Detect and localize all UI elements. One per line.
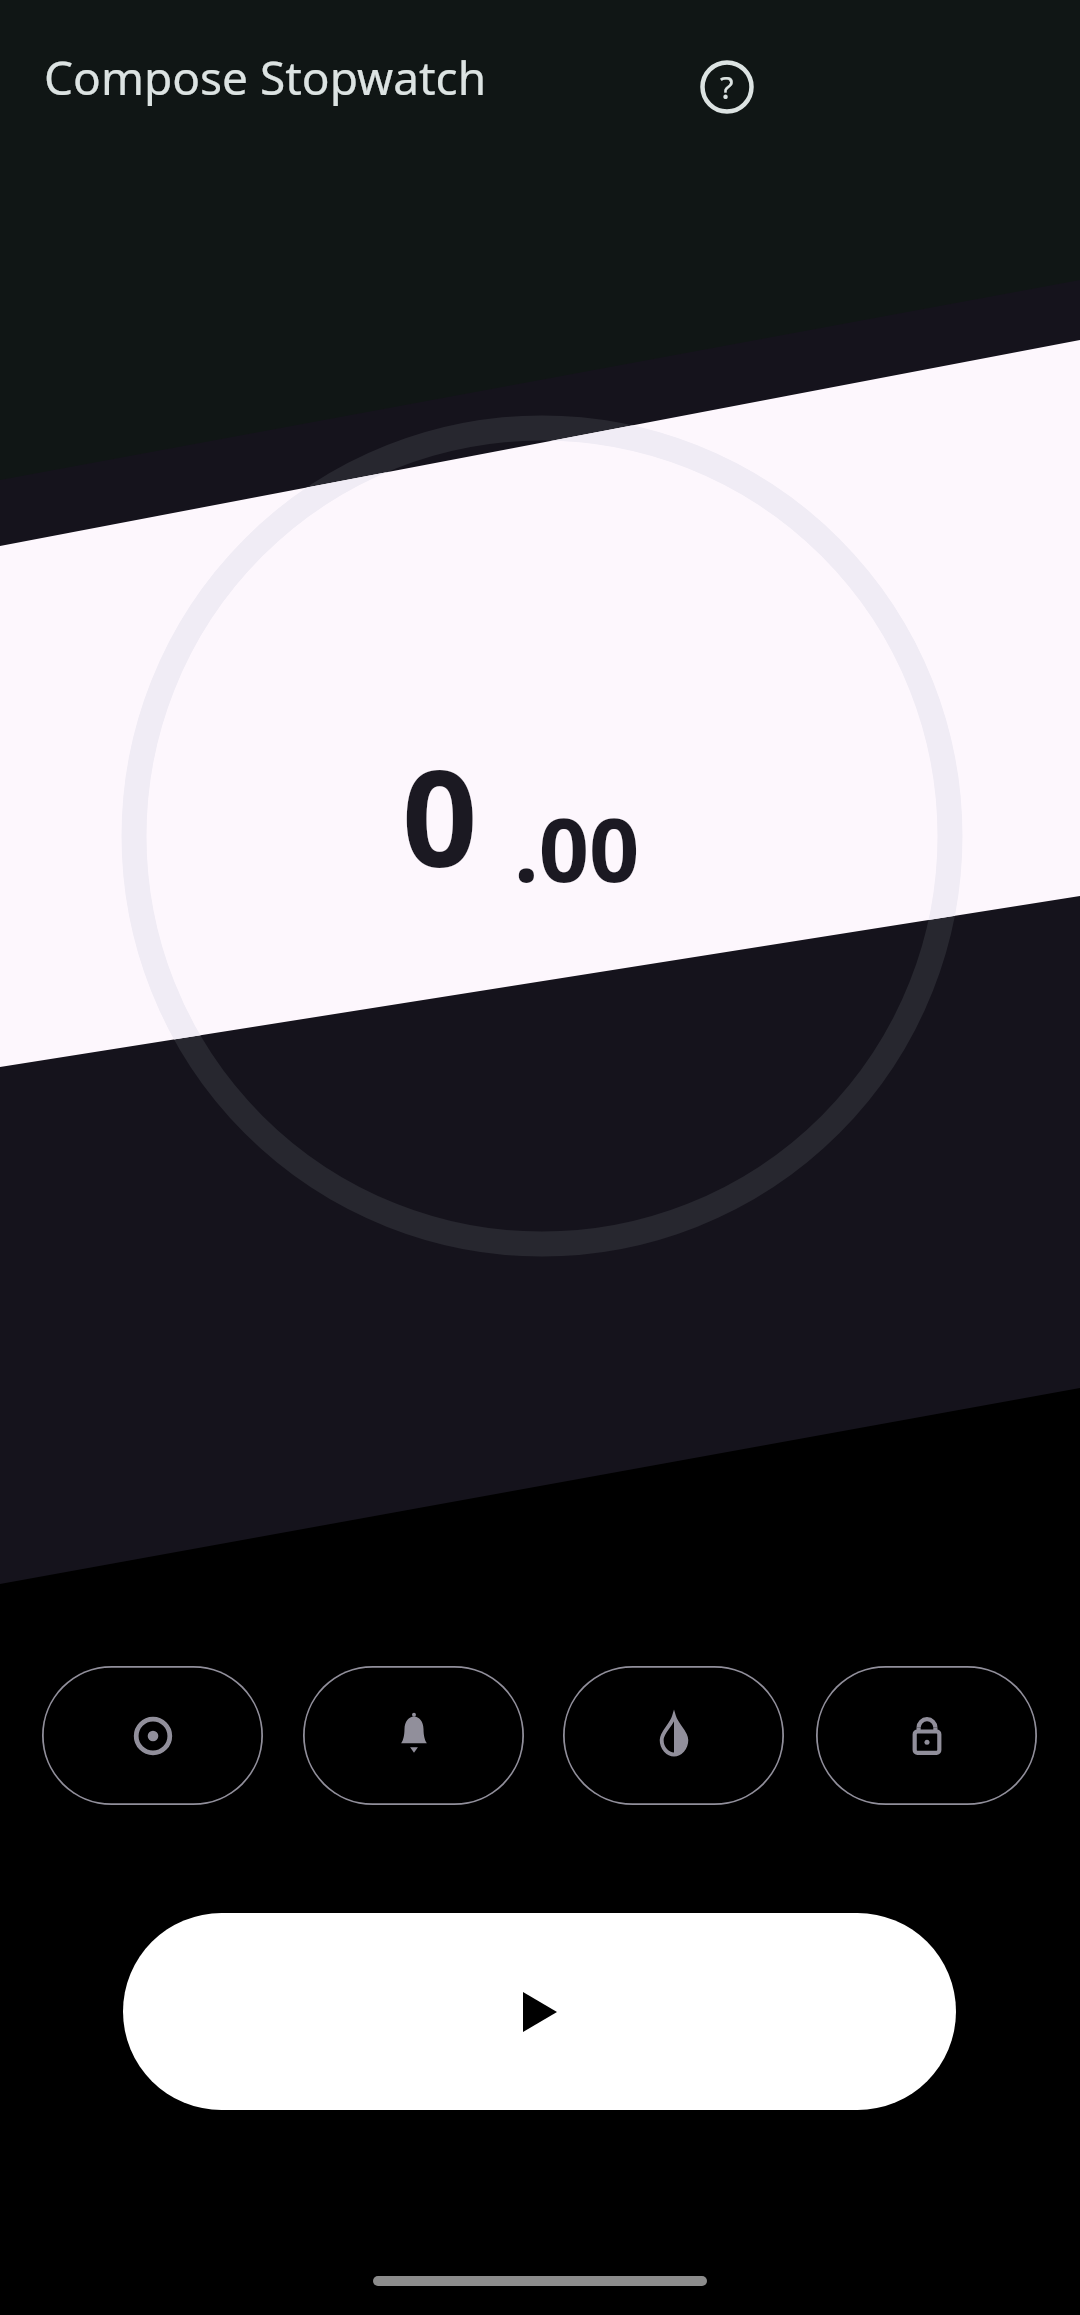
staticText: ? xyxy=(720,66,734,108)
button[interactable]: Lock xyxy=(816,1666,1037,1805)
button[interactable]: Compose Stopwatch xyxy=(44,46,487,106)
staticText: 0 xyxy=(402,726,478,906)
staticText: Compose Stopwatch xyxy=(44,46,487,106)
button[interactable]: Theme xyxy=(563,1666,784,1805)
button[interactable]: Start xyxy=(123,1913,956,2110)
button[interactable]: Help xyxy=(700,60,754,114)
button[interactable]: Alarm xyxy=(303,1666,524,1805)
button[interactable]: Lap xyxy=(42,1666,263,1805)
staticText: .00 xyxy=(514,788,640,908)
